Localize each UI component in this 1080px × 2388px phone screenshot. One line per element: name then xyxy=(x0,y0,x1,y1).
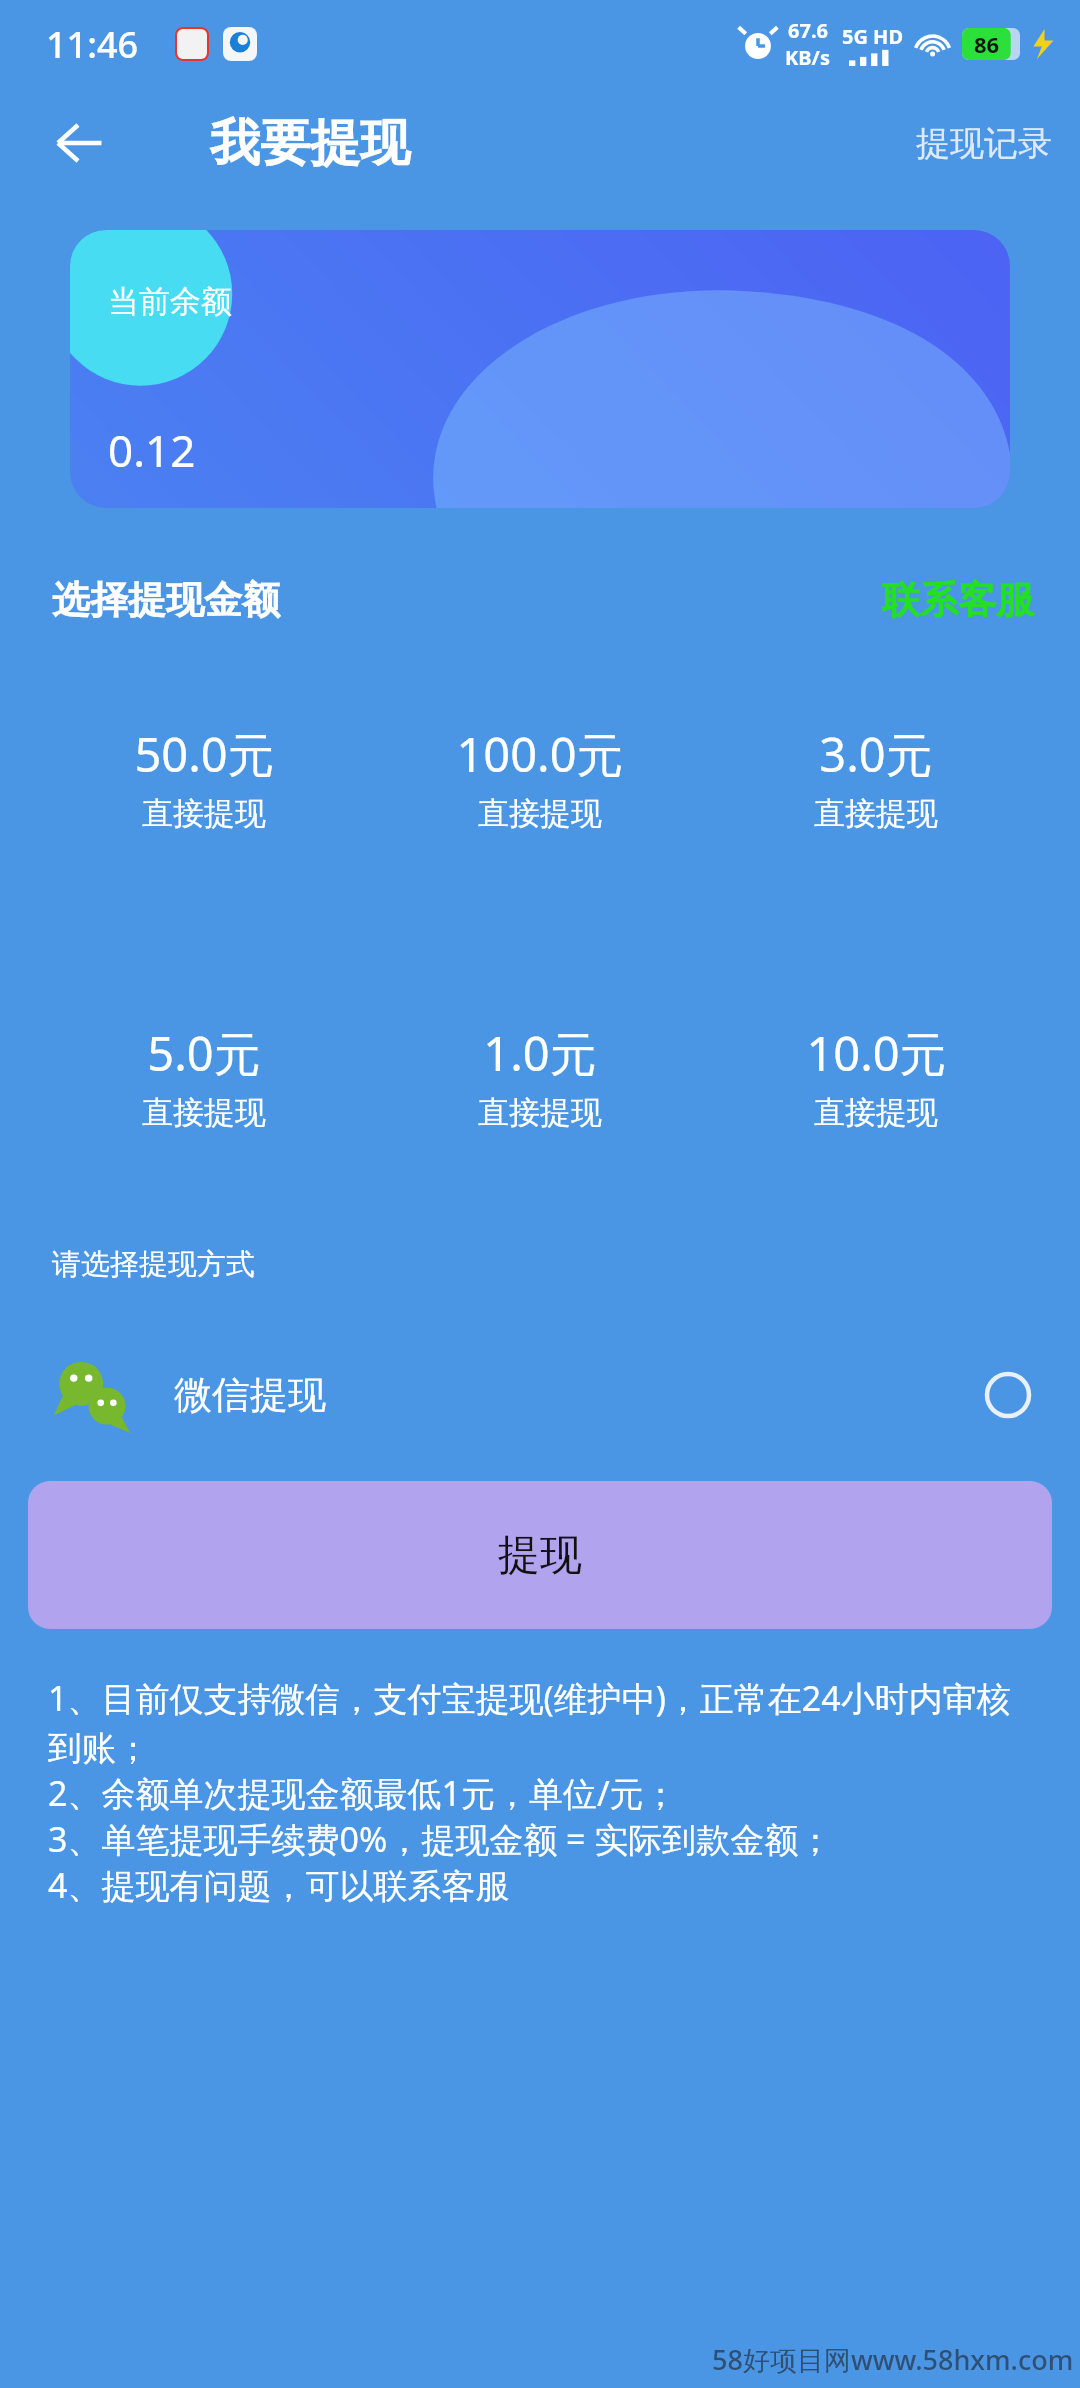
staticText: 3.0元 xyxy=(819,722,933,786)
staticText: 直接提现 xyxy=(142,794,266,833)
button[interactable]: 微信提现 xyxy=(0,1347,1080,1443)
button[interactable]: Back xyxy=(40,104,118,182)
staticText: 直接提现 xyxy=(814,1093,938,1132)
staticText: 选择提现金额 xyxy=(52,576,280,624)
staticText: 11:46 xyxy=(46,20,139,69)
button[interactable]: 提现 xyxy=(28,1481,1052,1629)
button[interactable]: 3.0元 xyxy=(708,718,1044,837)
staticText: 1、目前仅支持微信，支付宝提现(维护中)，正常在24小时内审核到账； xyxy=(48,1675,1044,1770)
staticText: 1.0元 xyxy=(483,1021,597,1085)
button[interactable]: 当前余额 xyxy=(70,230,1010,508)
staticText: 10.0元 xyxy=(806,1021,947,1085)
staticText: 100.0元 xyxy=(456,722,624,786)
button[interactable]: 提现记录 xyxy=(916,122,1080,165)
staticText: 请选择提现方式 xyxy=(52,1246,255,1283)
button[interactable]: 5.0元 xyxy=(36,1017,372,1136)
staticText: 直接提现 xyxy=(478,1093,602,1132)
staticText: 2、余额单次提现金额最低1元，单位/元； xyxy=(48,1770,678,1816)
staticText: 0.12 xyxy=(108,420,196,480)
staticText: 86 xyxy=(974,29,1000,59)
staticText: 5G HD xyxy=(842,23,904,50)
staticText: 3、单笔提现手续费0%，提现金额 = 实际到款金额； xyxy=(48,1816,833,1862)
staticText: 我要提现 xyxy=(210,112,410,175)
staticText: 直接提现 xyxy=(814,794,938,833)
button[interactable]: 1.0元 xyxy=(372,1017,708,1136)
staticText: 4、提现有问题，可以联系客服 xyxy=(48,1862,510,1908)
button[interactable]: 10.0元 xyxy=(708,1017,1044,1136)
button[interactable]: 100.0元 xyxy=(372,718,708,837)
staticText: 直接提现 xyxy=(142,1093,266,1132)
staticText: 当前余额 xyxy=(108,282,232,321)
button[interactable]: 50.0元 xyxy=(36,718,372,837)
staticText: 微信提现 xyxy=(174,1371,326,1419)
staticText: 提现 xyxy=(498,1529,582,1582)
staticText: KB/s xyxy=(785,44,830,71)
staticText: 58好项目网www.58hxm.com xyxy=(712,2341,1074,2378)
other: Select WeChat withdrawal xyxy=(984,1371,1032,1419)
staticText: 50.0元 xyxy=(134,722,275,786)
staticText: 直接提现 xyxy=(478,794,602,833)
staticText: 67.6 xyxy=(788,17,828,44)
button[interactable]: 联系客服 xyxy=(882,576,1080,624)
staticText: 5.0元 xyxy=(147,1021,261,1085)
